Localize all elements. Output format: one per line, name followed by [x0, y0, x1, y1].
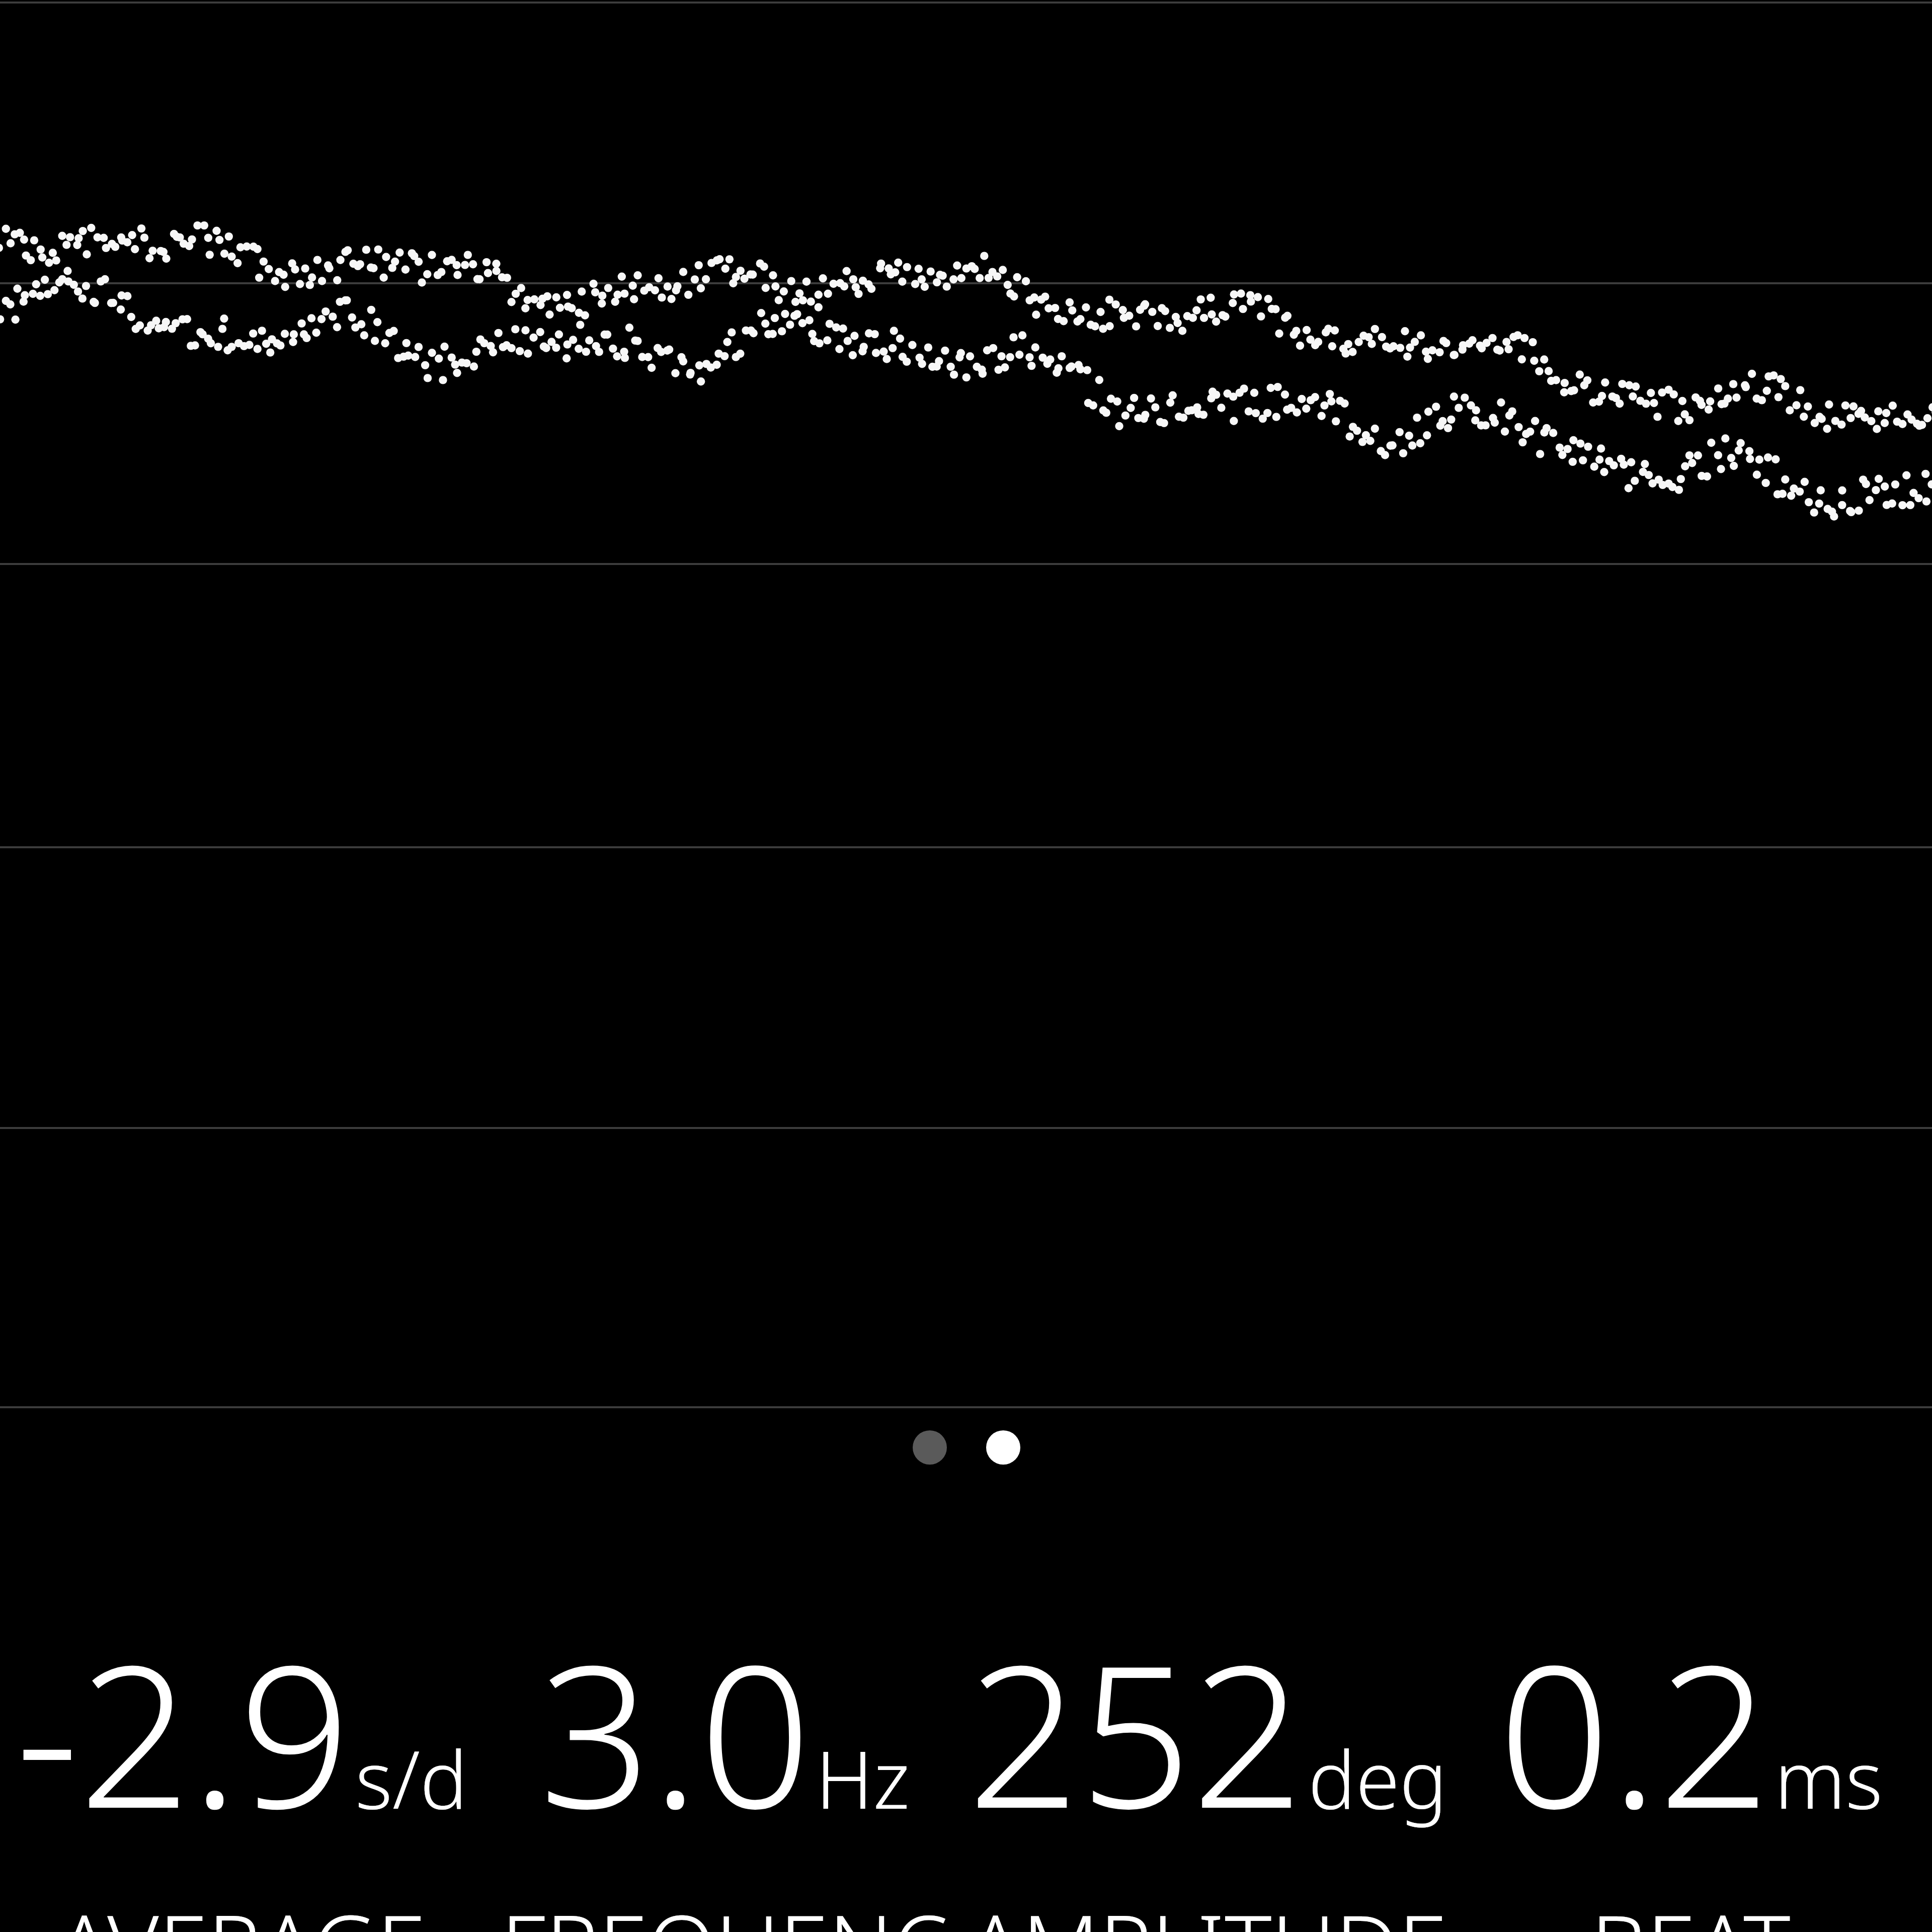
button[interactable]: Page 2, selected	[986, 1430, 1020, 1465]
staticText: FREQUENCY	[483, 1885, 966, 1932]
staticText: 252	[968, 1598, 1304, 1865]
staticText: deg	[1308, 1724, 1447, 1832]
staticText: 3.0	[539, 1598, 812, 1865]
button[interactable]: 3.0	[483, 1598, 966, 1932]
staticText: ms	[1775, 1724, 1883, 1832]
staticText: s/d	[355, 1724, 468, 1832]
staticText: BEAT ERROR	[1449, 1885, 1932, 1932]
button[interactable]: Page 1	[913, 1430, 947, 1465]
staticText: AVERAGE	[57, 1885, 426, 1932]
staticText: 0.2	[1498, 1598, 1770, 1865]
button[interactable]: -2.9	[0, 1598, 483, 1932]
button[interactable]: 252	[966, 1598, 1449, 1932]
button[interactable]: 0.2	[1449, 1598, 1932, 1932]
staticText: Hz	[816, 1724, 910, 1832]
staticText: -2.9	[16, 1598, 351, 1865]
staticText: AMPLITUDE	[968, 1885, 1447, 1932]
button[interactable]: Rate trace graph	[0, 0, 1932, 1409]
